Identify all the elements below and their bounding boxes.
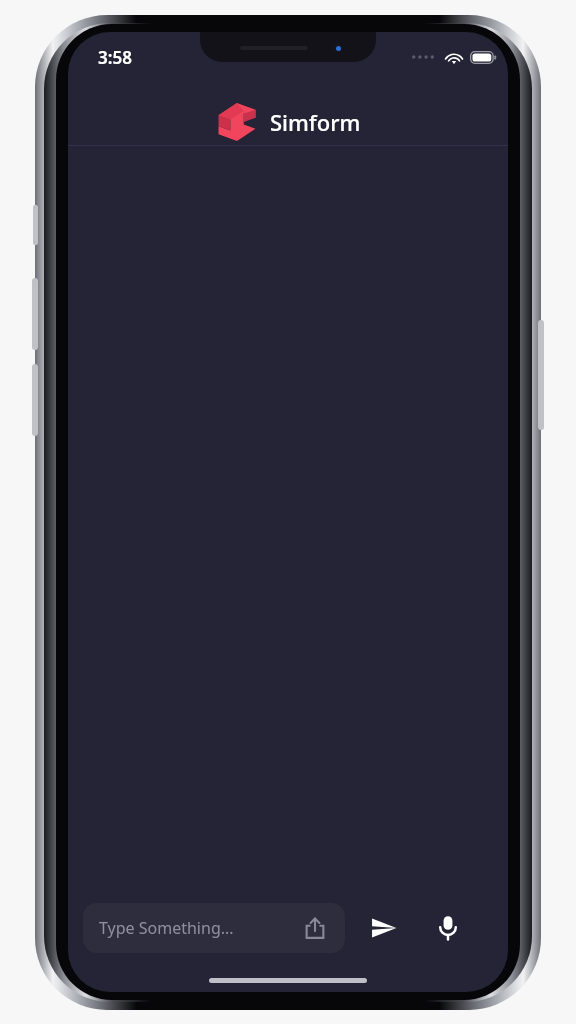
button[interactable]: Type Something...: [83, 903, 345, 953]
staticText: Type Something...: [99, 917, 301, 939]
button[interactable]: Send: [359, 903, 409, 953]
button[interactable]: Voice input: [423, 903, 473, 953]
button[interactable]: Attach file: [301, 914, 329, 942]
staticText: 3:58: [98, 46, 132, 69]
button[interactable]: Simform: [216, 98, 361, 146]
staticText: Simform: [270, 107, 361, 137]
